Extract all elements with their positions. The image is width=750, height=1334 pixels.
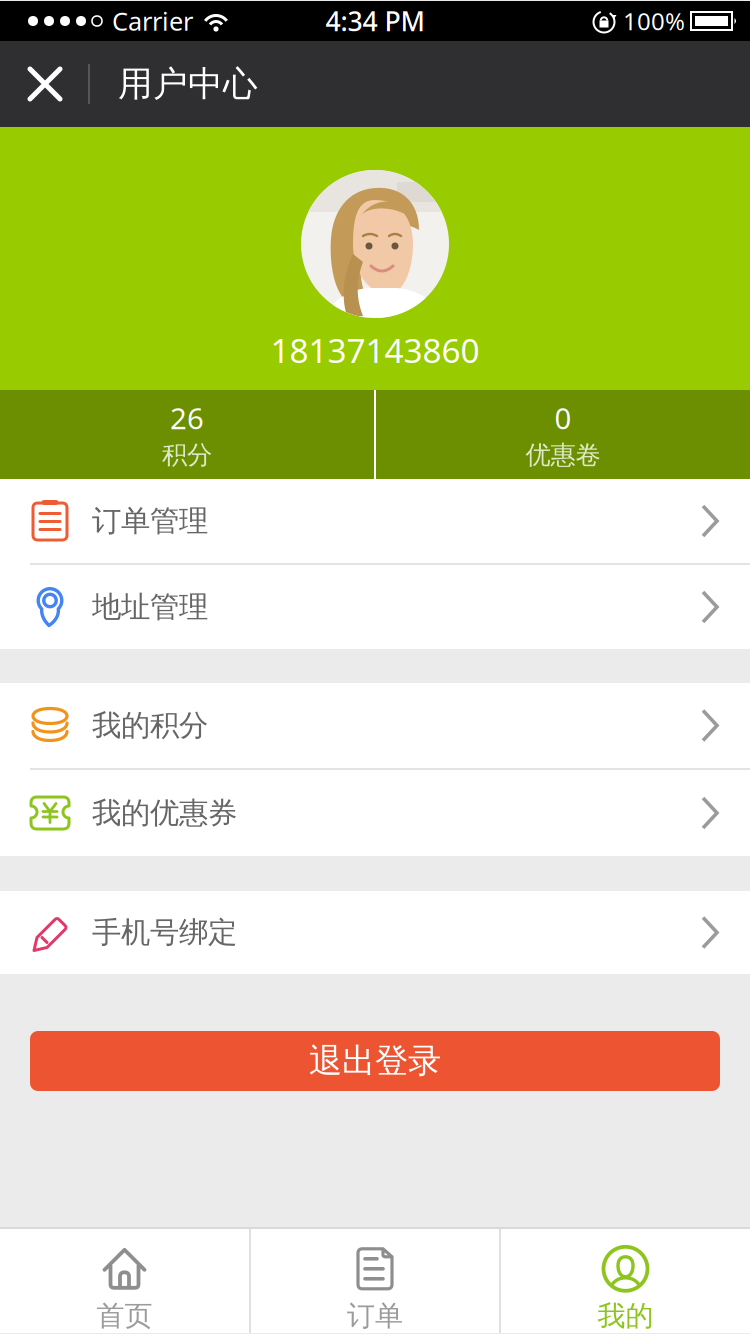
staticText: 我的	[597, 1299, 653, 1333]
staticText: 0	[554, 398, 571, 437]
staticText: Carrier	[112, 4, 193, 38]
button[interactable]: 订单管理	[0, 479, 750, 563]
button[interactable]: 0	[376, 390, 750, 479]
staticText: 18137143860	[270, 328, 479, 372]
button[interactable]: 地址管理	[0, 565, 750, 649]
button[interactable]: 订单	[251, 1229, 499, 1333]
staticText: 订单管理	[92, 503, 208, 539]
button[interactable]: 退出登录	[30, 1031, 720, 1091]
staticText: 手机号绑定	[92, 914, 237, 950]
button[interactable]: Close	[0, 41, 88, 127]
staticText: 4:34 PM	[325, 3, 424, 39]
staticText: 用户中心	[118, 63, 258, 105]
staticText: 首页	[96, 1299, 152, 1333]
staticText: 优惠卷	[525, 439, 600, 470]
button[interactable]: 我的积分	[0, 683, 750, 768]
button[interactable]: 26	[0, 390, 374, 479]
staticText: 26	[170, 398, 204, 437]
button[interactable]: 首页	[0, 1229, 249, 1333]
staticText: 积分	[162, 439, 212, 470]
staticText: 退出登录	[309, 1040, 441, 1081]
button[interactable]: 我的优惠券	[0, 770, 750, 856]
staticText: 订单	[347, 1299, 403, 1333]
staticText: 地址管理	[92, 589, 208, 625]
button[interactable]: 手机号绑定	[0, 891, 750, 974]
staticText: 100%	[623, 5, 685, 37]
staticText: 我的积分	[92, 707, 208, 743]
button[interactable]: 我的	[501, 1229, 750, 1333]
staticText: 我的优惠券	[92, 795, 237, 831]
